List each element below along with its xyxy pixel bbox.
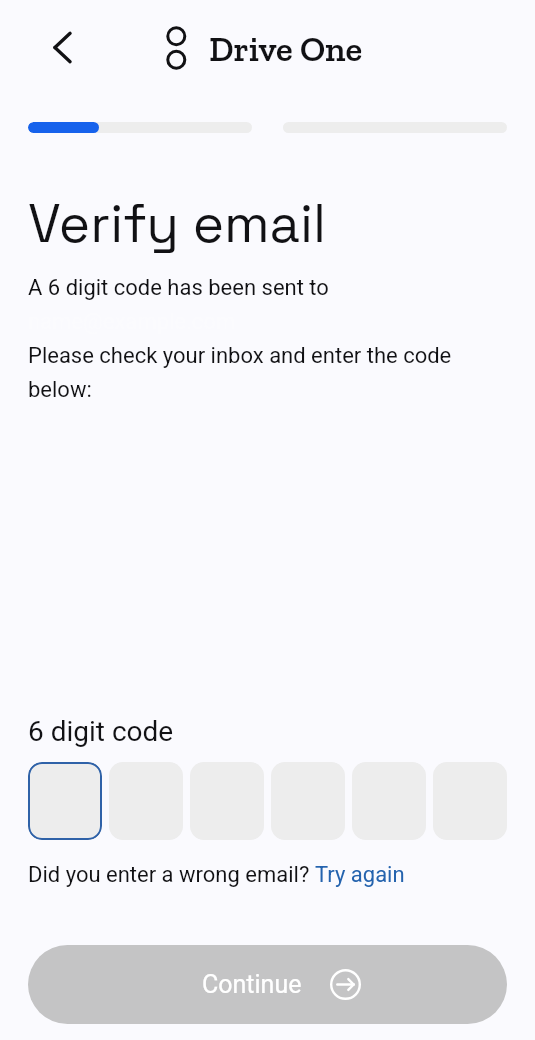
button[interactable]: Code digit 1: [28, 762, 102, 840]
button[interactable]: Try again: [315, 855, 405, 889]
staticText: A 6 digit code has been sent to: [28, 268, 329, 302]
button[interactable]: Back: [39, 24, 87, 72]
button[interactable]: Continue: [28, 945, 507, 1024]
staticText: Did you enter a wrong email?: [28, 855, 315, 889]
staticText: 6 digit code: [28, 715, 174, 748]
staticText: Verify email: [28, 190, 327, 258]
staticText: Continue: [202, 970, 302, 999]
staticText: Drive One: [209, 28, 363, 70]
staticText: Please check your inbox and enter the co…: [28, 336, 507, 404]
